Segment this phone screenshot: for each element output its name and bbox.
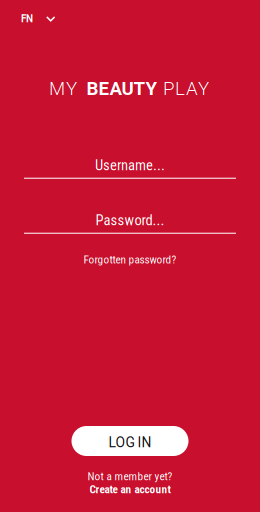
staticText: Forgotten password?	[83, 253, 176, 266]
staticText: Username...	[95, 157, 165, 174]
staticText: FN	[21, 13, 33, 25]
button[interactable]: FN	[13, 7, 63, 31]
staticText: Password...	[95, 212, 164, 229]
staticText: LOG IN	[108, 434, 151, 451]
staticText: Create an account	[89, 483, 170, 496]
staticText: Not a member yet?	[87, 470, 172, 483]
staticText: PLAY	[163, 78, 209, 100]
button[interactable]: Create an account	[89, 485, 170, 494]
staticText: MY	[49, 78, 77, 100]
staticText: BEAUTY	[86, 78, 157, 100]
button[interactable]: Forgotten password?	[73, 250, 186, 270]
button[interactable]: LOG IN	[71, 426, 188, 456]
